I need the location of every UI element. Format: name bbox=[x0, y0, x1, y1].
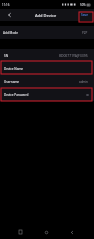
staticText: Device Name bbox=[4, 67, 24, 71]
button[interactable]: Username bbox=[0, 75, 94, 88]
button[interactable]: Save bbox=[79, 9, 94, 21]
staticText: Device Password bbox=[4, 93, 29, 97]
staticText: P2P bbox=[82, 31, 88, 35]
button[interactable]: Add Mode bbox=[0, 26, 94, 39]
button[interactable]: Device Name bbox=[0, 62, 94, 75]
button[interactable]: Recent apps bbox=[14, 226, 26, 238]
staticText: Add Mode bbox=[3, 31, 18, 35]
button[interactable]: SN bbox=[0, 49, 94, 62]
button[interactable]: Show password bbox=[84, 91, 91, 98]
staticText: Save bbox=[81, 13, 88, 17]
staticText: Add Device bbox=[35, 13, 57, 18]
staticText: SN bbox=[4, 54, 9, 58]
staticText: 11:16 bbox=[2, 3, 10, 7]
button[interactable]: Back bbox=[66, 226, 78, 238]
button[interactable]: Home bbox=[40, 226, 52, 238]
button[interactable]: Device Password bbox=[0, 88, 94, 101]
button[interactable]: Back bbox=[0, 9, 18, 21]
staticText: 8D00771YAJF3395 bbox=[59, 53, 88, 58]
staticText: admin bbox=[79, 80, 88, 84]
staticText: Username bbox=[4, 80, 20, 84]
staticText: 50% bbox=[80, 3, 86, 7]
